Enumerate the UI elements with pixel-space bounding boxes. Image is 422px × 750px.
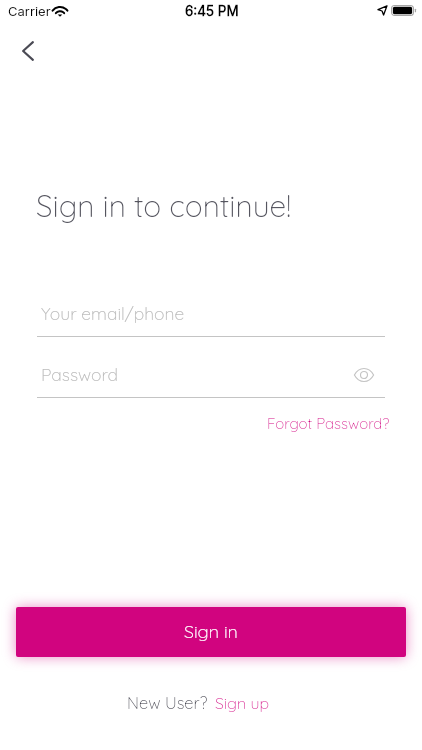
button[interactable]: Show password [348,359,380,391]
button[interactable]: Sign up [215,693,270,713]
button[interactable]: Back [8,31,48,71]
staticText: Password [41,363,119,385]
staticText: Sign in to continue! [36,187,291,225]
staticText: Your email/phone [41,302,185,324]
staticText: Carrier [8,3,51,19]
button[interactable]: Sign in [16,607,406,657]
staticText: Sign up [215,693,270,713]
staticText: Sign in [184,620,238,643]
staticText: 6:45 PM [185,3,239,19]
staticText: New User? [127,692,208,713]
button[interactable]: Forgot Password? [262,412,395,435]
staticText: Forgot Password? [267,414,390,433]
